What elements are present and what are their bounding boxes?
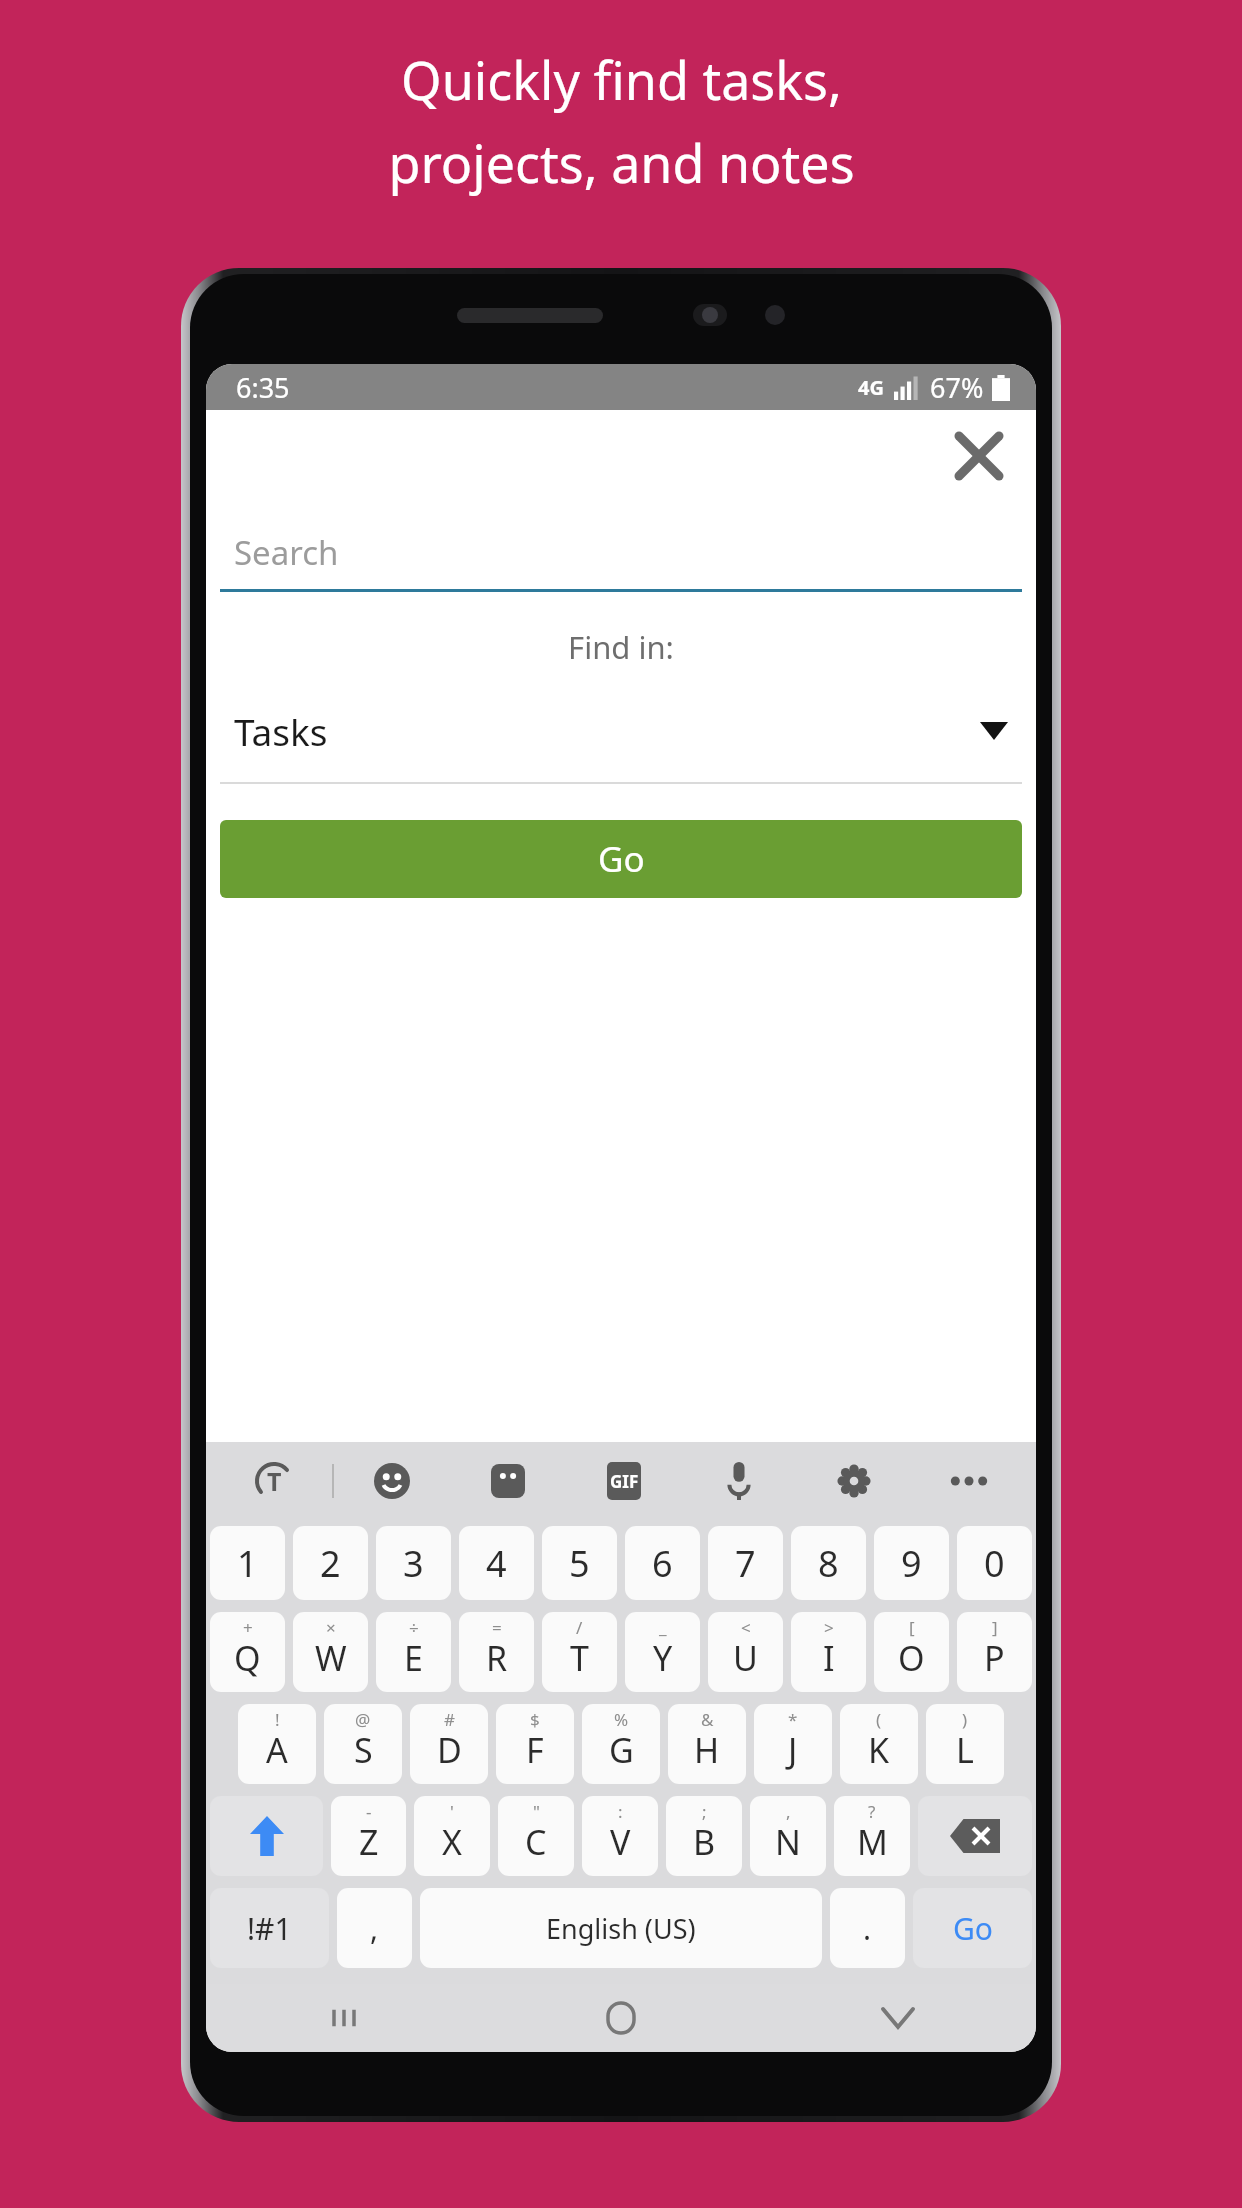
staticText: . — [863, 1908, 872, 1949]
button[interactable]: Home — [482, 1984, 759, 2052]
button[interactable]: ' — [414, 1796, 490, 1876]
staticText: × — [326, 1616, 336, 1639]
button[interactable]: & — [668, 1704, 746, 1784]
staticText: projects, and notes — [388, 127, 855, 198]
button[interactable]: 0 — [957, 1526, 1032, 1600]
staticText: Q — [234, 1635, 261, 1681]
button[interactable]: 2 — [293, 1526, 368, 1600]
button[interactable]: , — [337, 1888, 412, 1968]
staticText: L — [956, 1727, 974, 1773]
staticText: Go — [953, 1908, 993, 1949]
button[interactable]: Translate — [216, 1442, 332, 1520]
button[interactable]: ] — [957, 1612, 1032, 1692]
button[interactable]: ! — [238, 1704, 316, 1784]
button[interactable]: = — [459, 1612, 534, 1692]
staticText: Quickly find tasks, — [401, 44, 842, 115]
button[interactable]: More options — [911, 1442, 1026, 1520]
staticText: P — [984, 1635, 1005, 1681]
button[interactable]: % — [582, 1704, 660, 1784]
staticText: 3 — [403, 1539, 424, 1588]
button[interactable]: Emoji — [334, 1442, 450, 1520]
staticText: C — [525, 1819, 547, 1865]
button[interactable]: 8 — [791, 1526, 866, 1600]
staticText: * — [788, 1708, 798, 1731]
button[interactable]: _ — [625, 1612, 700, 1692]
staticText: 7 — [735, 1539, 756, 1588]
staticText: M — [857, 1819, 888, 1865]
button[interactable]: - — [331, 1796, 406, 1876]
button[interactable]: Go — [913, 1888, 1032, 1968]
staticText: !#1 — [247, 1908, 292, 1949]
staticText: % — [614, 1708, 629, 1731]
button[interactable]: + — [210, 1612, 285, 1692]
staticText: 4 — [486, 1539, 507, 1588]
staticText: 0 — [984, 1539, 1005, 1588]
button[interactable] — [918, 1796, 1032, 1876]
button[interactable]: Keyboard settings — [796, 1442, 911, 1520]
button[interactable]: Recents — [206, 1984, 482, 2052]
button[interactable]: ; — [666, 1796, 742, 1876]
staticText: 4G — [858, 374, 884, 401]
staticText: > — [824, 1616, 834, 1639]
button[interactable] — [210, 1796, 323, 1876]
staticText: < — [741, 1616, 751, 1639]
staticText: & — [701, 1708, 714, 1731]
button[interactable]: Hide keyboard — [759, 1984, 1036, 2052]
staticText: GIF — [610, 1470, 639, 1493]
button[interactable]: " — [498, 1796, 574, 1876]
button[interactable]: @ — [324, 1704, 402, 1784]
button[interactable]: GIF — [566, 1442, 681, 1520]
button[interactable]: : — [582, 1796, 658, 1876]
staticText: + — [243, 1616, 253, 1639]
button[interactable]: * — [754, 1704, 832, 1784]
staticText: I — [823, 1635, 835, 1681]
staticText: T — [267, 1464, 282, 1498]
button[interactable]: × — [293, 1612, 368, 1692]
staticText: V — [610, 1819, 631, 1865]
button[interactable]: 7 — [708, 1526, 783, 1600]
button[interactable]: > — [791, 1612, 866, 1692]
button[interactable]: 6 — [625, 1526, 700, 1600]
button[interactable]: ÷ — [376, 1612, 451, 1692]
button[interactable]: # — [410, 1704, 488, 1784]
button[interactable]: 5 — [542, 1526, 617, 1600]
button[interactable]: 1 — [210, 1526, 285, 1600]
staticText: W — [315, 1635, 347, 1681]
button[interactable]: , — [750, 1796, 826, 1876]
staticText: 6:35 — [236, 369, 290, 406]
staticText: ? — [868, 1800, 876, 1823]
staticText: E — [404, 1635, 423, 1681]
staticText: 67% — [930, 369, 984, 406]
button[interactable]: / — [542, 1612, 617, 1692]
button[interactable]: Search — [220, 502, 1022, 592]
button[interactable]: $ — [496, 1704, 574, 1784]
staticText: : — [618, 1800, 623, 1823]
button[interactable]: Go — [220, 820, 1022, 898]
staticText: F — [526, 1727, 544, 1773]
staticText: T — [570, 1635, 589, 1681]
staticText: , — [786, 1800, 791, 1823]
staticText: H — [694, 1727, 720, 1773]
staticText: ] — [992, 1616, 998, 1639]
button[interactable]: English (US) — [420, 1888, 822, 1968]
button[interactable]: Voice input — [681, 1442, 796, 1520]
staticText: G — [609, 1727, 634, 1773]
staticText: # — [444, 1708, 455, 1731]
staticText: Search — [234, 530, 339, 575]
staticText: Z — [359, 1819, 379, 1865]
button[interactable]: Close — [948, 425, 1010, 487]
staticText: Go — [598, 835, 645, 883]
button[interactable]: 4 — [459, 1526, 534, 1600]
button[interactable]: Stickers — [450, 1442, 566, 1520]
button[interactable]: < — [708, 1612, 783, 1692]
button[interactable]: ( — [840, 1704, 918, 1784]
button[interactable]: Tasks — [220, 706, 1022, 784]
button[interactable]: 9 — [874, 1526, 949, 1600]
button[interactable]: ? — [834, 1796, 910, 1876]
button[interactable]: . — [830, 1888, 905, 1968]
staticText: - — [366, 1800, 372, 1823]
button[interactable]: [ — [874, 1612, 949, 1692]
button[interactable]: ) — [926, 1704, 1004, 1784]
button[interactable]: !#1 — [210, 1888, 329, 1968]
button[interactable]: 3 — [376, 1526, 451, 1600]
